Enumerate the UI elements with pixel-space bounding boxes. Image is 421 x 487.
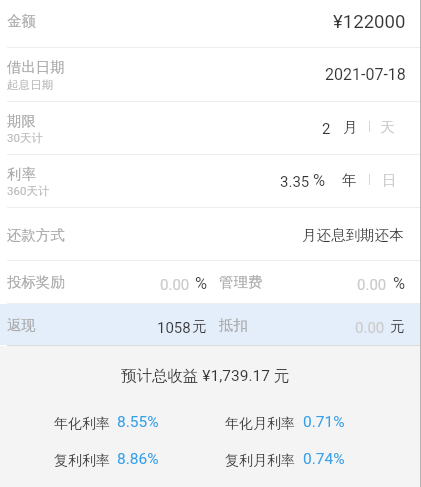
staticText: 0.71% <box>303 413 345 431</box>
staticText: 360天计 <box>7 184 50 198</box>
button[interactable]: 还款方式 <box>0 208 421 260</box>
staticText: 1058 <box>157 319 191 337</box>
staticText: 3.35 <box>280 173 310 191</box>
staticText: 投标奖励 <box>7 273 65 291</box>
staticText: 借出日期 <box>7 58 65 76</box>
button[interactable]: 借出日期 <box>0 48 421 101</box>
staticText: 2 <box>322 120 331 138</box>
button[interactable]: 投标奖励 <box>0 260 421 303</box>
staticText: 8.55% <box>117 413 159 431</box>
staticText: 复利利率 <box>54 452 110 470</box>
staticText: 年化利率 <box>54 415 110 433</box>
staticText: 月 <box>343 118 358 136</box>
staticText: 2021-07-18 <box>325 65 406 84</box>
staticText: 30天计 <box>7 131 43 145</box>
staticText: 期限 <box>7 112 36 130</box>
staticText: 天 <box>380 118 395 136</box>
staticText: 返现 <box>7 316 36 334</box>
staticText: 复利月利率 <box>225 452 295 470</box>
staticText: 0.00 <box>357 276 387 294</box>
staticText: 元 <box>390 317 405 335</box>
staticText: 预计总收益 ¥1,739.17 元 <box>121 366 290 386</box>
staticText: 抵扣 <box>219 316 248 334</box>
staticText: 年 <box>342 171 357 189</box>
button[interactable]: 金额 <box>0 0 421 47</box>
staticText: ¥122000 <box>333 11 406 33</box>
staticText: 还款方式 <box>7 226 65 244</box>
staticText: 日 <box>382 171 397 189</box>
staticText: % <box>195 274 208 293</box>
staticText: 利率 <box>7 165 36 183</box>
staticText: 管理费 <box>219 273 263 291</box>
button[interactable]: 期限 <box>0 102 421 154</box>
button[interactable]: 返现 <box>0 304 421 345</box>
button[interactable]: 利率 <box>0 155 421 207</box>
staticText: 起息日期 <box>7 78 53 92</box>
staticText: 月还息到期还本 <box>302 226 404 244</box>
staticText: 0.74% <box>303 450 345 468</box>
staticText: % <box>393 274 406 293</box>
staticText: 金额 <box>7 12 36 30</box>
staticText: 元 <box>192 317 207 335</box>
staticText: 0.00 <box>355 319 385 337</box>
staticText: 8.86% <box>117 450 159 468</box>
staticText: % <box>313 171 326 190</box>
staticText: 年化月利率 <box>225 415 295 433</box>
staticText: 0.00 <box>160 276 190 294</box>
